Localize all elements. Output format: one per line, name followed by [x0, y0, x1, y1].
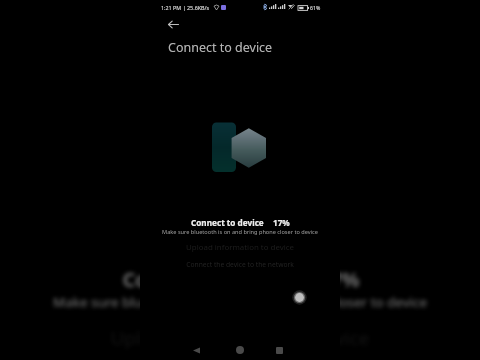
- button[interactable]: Recent apps: [264, 339, 294, 360]
- button[interactable]: Back: [162, 13, 184, 35]
- staticText: Upload information to device: [140, 242, 340, 253]
- staticText: Connect to device: [122, 266, 298, 292]
- staticText: 61%: [310, 4, 321, 11]
- button[interactable]: Back: [181, 339, 211, 360]
- staticText: Connect the device to the network: [140, 260, 340, 269]
- staticText: Upload information to device: [0, 326, 480, 352]
- staticText: Make sure bluetooth is on and bring phon…: [0, 292, 480, 311]
- staticText: 17%: [273, 217, 290, 228]
- staticText: 17%: [319, 266, 360, 292]
- button[interactable]: Home: [225, 339, 255, 360]
- staticText: 1:21 PM | 25.6KB/s: [161, 4, 210, 11]
- staticText: Connect to device: [191, 217, 264, 228]
- staticText: Connect to device: [168, 39, 273, 56]
- staticText: Make sure bluetooth is on and bring phon…: [140, 228, 340, 236]
